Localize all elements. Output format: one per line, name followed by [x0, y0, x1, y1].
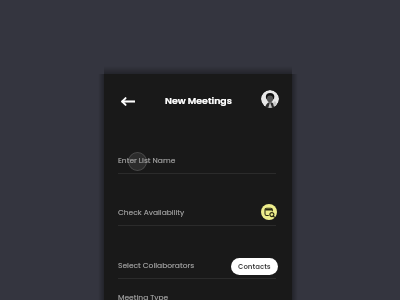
- button[interactable]: Meeting Type: [104, 289, 292, 300]
- button[interactable]: Enter List Name: [104, 152, 292, 182]
- button[interactable]: Select Collaborators: [104, 257, 292, 287]
- staticText: Select Collaborators: [118, 260, 195, 270]
- staticText: New Meetings: [165, 94, 232, 107]
- button[interactable]: Contacts: [231, 258, 278, 275]
- button[interactable]: Check calendar availability: [261, 204, 277, 220]
- staticText: Enter List Name: [118, 155, 176, 165]
- staticText: Check Availability: [118, 207, 185, 217]
- button[interactable]: Back: [113, 86, 143, 116]
- button[interactable]: Check Availability: [104, 204, 292, 234]
- button[interactable]: Profile: [261, 90, 279, 108]
- staticText: Contacts: [238, 262, 271, 272]
- staticText: Meeting Type: [118, 292, 169, 300]
